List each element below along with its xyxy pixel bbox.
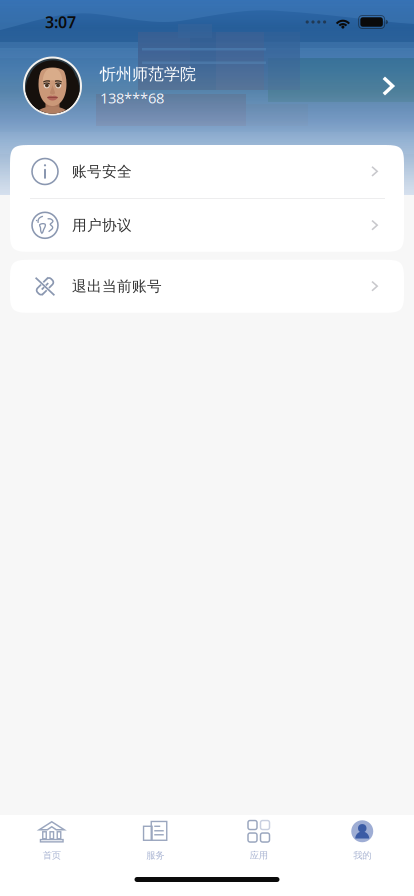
button[interactable]: 忻州师范学院 xyxy=(0,44,414,128)
staticText: 退出当前账号 xyxy=(72,277,162,295)
button[interactable]: 账号安全 xyxy=(10,145,404,198)
button[interactable]: 服务 xyxy=(103,815,207,867)
button[interactable]: 应用 xyxy=(207,815,310,867)
staticText: 服务 xyxy=(146,850,164,861)
button[interactable]: 用户协议 xyxy=(10,199,404,252)
staticText: 我的 xyxy=(353,850,371,861)
staticText: 忻州师范学院 xyxy=(100,64,196,84)
staticText: 应用 xyxy=(250,850,268,861)
staticText: 用户协议 xyxy=(72,216,132,234)
button[interactable]: 我的 xyxy=(310,815,414,867)
staticText: 账号安全 xyxy=(72,162,132,180)
button[interactable]: 退出当前账号 xyxy=(10,260,404,313)
staticText: 3:07 xyxy=(45,11,76,33)
staticText: 首页 xyxy=(43,850,61,861)
button[interactable]: 首页 xyxy=(0,815,103,867)
staticText: 138***68 xyxy=(100,88,164,108)
